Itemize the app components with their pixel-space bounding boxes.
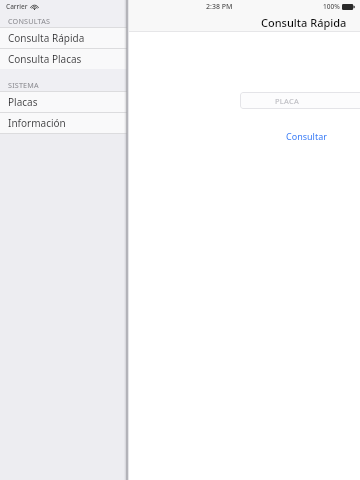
staticText: Consulta Placas	[8, 52, 82, 66]
staticText: Carrier	[6, 2, 28, 11]
staticText: PLACA	[275, 96, 300, 106]
staticText: SISTEMA	[8, 80, 39, 90]
staticText: 2:38 PM	[206, 2, 233, 12]
button[interactable]: Información	[0, 112, 127, 133]
button[interactable]: Placas	[0, 91, 127, 112]
button[interactable]: Consulta Rápida	[0, 27, 127, 48]
staticText: 100%	[323, 2, 340, 11]
button[interactable]: Consultar	[285, 129, 327, 143]
staticText: Placas	[8, 95, 38, 109]
staticText: Consultar	[286, 130, 327, 142]
staticText: Consulta Rápida	[8, 31, 85, 45]
button[interactable]: Consulta Placas	[0, 48, 127, 69]
staticText: Información	[8, 116, 66, 130]
staticText: CONSULTAS	[8, 16, 51, 26]
button[interactable]: PLACA	[240, 92, 360, 109]
staticText: Consulta Rápida	[261, 15, 347, 30]
